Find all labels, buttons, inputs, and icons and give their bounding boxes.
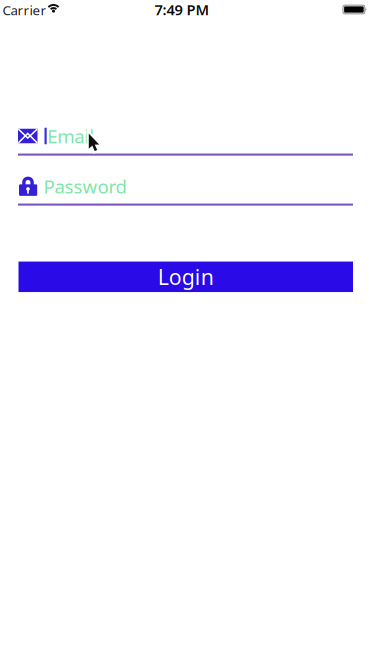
button[interactable]: Password — [18, 171, 353, 201]
button[interactable]: Email — [18, 121, 353, 151]
staticText: 7:49 PM — [154, 0, 209, 19]
staticText: Login — [158, 263, 214, 291]
staticText: Email — [47, 124, 94, 148]
button[interactable]: Login — [18, 262, 353, 292]
staticText: Password — [43, 174, 126, 199]
staticText: Carrier — [2, 1, 46, 19]
